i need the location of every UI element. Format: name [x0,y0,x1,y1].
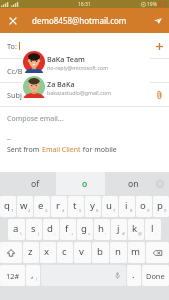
staticText: @ [138,230,142,236]
staticText: h [98,222,104,235]
button[interactable]: t [68,196,84,217]
staticText: Subject [7,90,33,100]
staticText: s [31,222,36,235]
staticText: demo8458@hotmail.com [32,15,127,26]
staticText: n [115,245,121,258]
button[interactable]: Backspace [146,242,169,263]
button[interactable]: of [11,172,60,195]
button[interactable]: k [128,219,144,240]
button[interactable]: e [34,196,50,217]
staticText: \ [20,230,22,236]
button[interactable]: u [102,196,118,217]
button[interactable]: Space [41,265,126,286]
staticText: . [156,230,158,236]
button[interactable]: o [136,196,152,217]
button[interactable]: n [110,242,127,263]
staticText: To: [7,41,17,51]
staticText: 9 [147,207,150,213]
staticText: 7 [113,207,116,213]
staticText: 4 [62,207,65,213]
staticText: 0 [164,207,167,213]
button[interactable]: q [0,196,16,217]
staticText: e [38,199,44,212]
button[interactable]: i [119,196,135,217]
staticText: p [157,199,163,212]
staticText: bakazastudio@gmail.com [47,89,111,96]
button[interactable]: m [128,242,145,263]
staticText: 1 [11,207,14,213]
staticText: : [105,230,107,236]
staticText: Done [146,271,165,281]
staticText: y [90,199,95,212]
staticText: 8 [130,207,133,213]
staticText: f [65,222,69,235]
staticText: q [4,199,10,212]
button[interactable]: p [153,196,169,217]
staticText: a [13,222,19,235]
button[interactable]: z [23,242,39,263]
button[interactable]: b [92,242,109,263]
button[interactable]: o [60,172,109,195]
button[interactable]: Close [0,8,26,33]
staticText: -- [7,134,12,143]
staticText: Za BaKa [47,79,75,89]
staticText: # [122,230,125,236]
staticText: v [79,245,84,258]
staticText: o [140,199,146,212]
staticText: d [47,222,53,235]
staticText: 16:31 [78,1,91,8]
button[interactable]: 12# [0,265,25,286]
staticText: no-reply@microsoft.com [47,64,109,71]
staticText: w [20,199,28,212]
button[interactable]: Attach file [149,85,169,105]
button[interactable]: s [26,219,42,240]
button[interactable]: l [145,219,161,240]
button[interactable]: Send [147,8,169,33]
staticText: on [128,178,139,190]
button[interactable]: Shift [0,242,22,263]
button[interactable]: More options [151,172,169,195]
button[interactable]: BaKa Team [22,51,150,73]
staticText: , [31,268,34,281]
button[interactable]: d [43,219,59,240]
button[interactable]: on [109,172,158,195]
button[interactable]: j [111,219,127,240]
staticText: m [131,245,140,258]
staticText: k [132,222,138,235]
button[interactable]: Za BaKa [22,76,150,98]
staticText: | [37,230,40,236]
button[interactable]: y [85,196,101,217]
staticText: g [81,222,87,235]
staticText: 19% [147,1,157,8]
button[interactable]: h [94,219,110,240]
staticText: Sent from [7,145,42,155]
staticText: i [125,199,128,212]
button[interactable]: g [77,219,93,240]
staticText: c [62,245,67,258]
button[interactable]: Add recipient [149,36,169,56]
button[interactable]: . [127,265,141,286]
button[interactable]: , [26,265,40,286]
staticText: l [151,222,154,235]
staticText: Email Client [42,145,81,155]
staticText: b [97,245,103,258]
staticText: 2 [28,207,31,213]
staticText: for mobile [81,145,117,155]
button[interactable]: r [51,196,67,217]
staticText: t [73,199,77,212]
staticText: u [106,199,112,212]
staticText: ! [36,276,38,282]
staticText: = [88,230,91,236]
staticText: + [71,230,74,236]
staticText: Cc/Bcc [7,66,30,76]
button[interactable]: a [8,219,25,240]
button[interactable]: Done [142,265,169,286]
button[interactable]: f [60,219,76,240]
staticText: 5 [79,207,82,213]
button[interactable]: w [17,196,33,217]
staticText: 6 [96,207,99,213]
button[interactable]: x [40,242,56,263]
button[interactable]: c [57,242,73,263]
staticText: z [28,245,33,258]
button[interactable]: v [74,242,91,263]
